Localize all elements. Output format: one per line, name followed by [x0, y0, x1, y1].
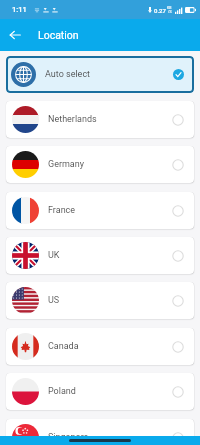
staticText: Singapore	[48, 432, 89, 443]
button[interactable]: Back	[5, 25, 25, 45]
button[interactable]: Canada	[6, 328, 194, 365]
button[interactable]: US	[6, 282, 194, 319]
staticText: Poland	[48, 386, 76, 397]
staticText: Location	[38, 29, 79, 41]
button[interactable]: Singapore	[6, 419, 194, 445]
staticText: Germany	[48, 159, 84, 170]
button[interactable]: Poland	[6, 373, 194, 410]
staticText: Canada	[48, 341, 79, 352]
staticText: Netherlands	[48, 114, 97, 125]
button[interactable]: France	[6, 192, 194, 229]
staticText: KB	[167, 6, 172, 10]
staticText: 0.27	[154, 7, 166, 14]
button[interactable]: Netherlands	[6, 101, 194, 138]
button[interactable]: Germany	[6, 146, 194, 183]
staticText: France	[48, 205, 76, 216]
staticText: US	[48, 295, 60, 306]
staticText: Auto select	[45, 69, 91, 80]
button[interactable]: Auto select	[6, 56, 194, 93]
staticText: UK	[48, 250, 60, 261]
staticText: 1:11	[12, 5, 27, 14]
button[interactable]: UK	[6, 237, 194, 274]
staticText: /S	[168, 10, 172, 14]
